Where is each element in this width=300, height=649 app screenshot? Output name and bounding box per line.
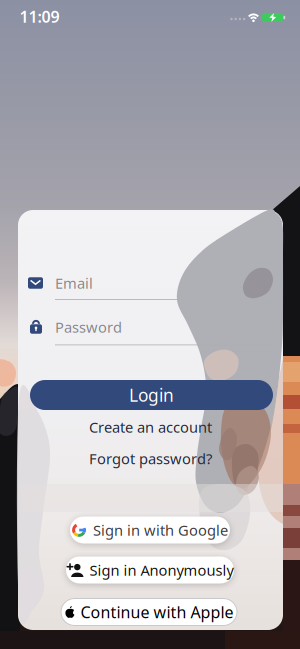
button[interactable]: Sign in with Google — [70, 516, 230, 543]
button[interactable]: Login — [30, 380, 273, 410]
staticText: Password — [55, 317, 122, 337]
staticText: Login — [129, 383, 174, 406]
button[interactable]: Sign in Anonymously — [66, 556, 234, 583]
staticText: Sign in Anonymously — [89, 560, 233, 580]
staticText: Create an account — [89, 417, 212, 437]
button[interactable]: Forgot password? — [89, 449, 212, 468]
button[interactable]: Create an account — [89, 417, 212, 437]
staticText: Sign in with Google — [93, 520, 228, 540]
staticText: Continue with Apple — [80, 601, 233, 623]
staticText: 11:09 — [19, 6, 59, 27]
staticText: Email — [55, 273, 93, 293]
staticText: Forgot password? — [89, 449, 212, 468]
button[interactable]: Continue with Apple — [61, 598, 237, 625]
